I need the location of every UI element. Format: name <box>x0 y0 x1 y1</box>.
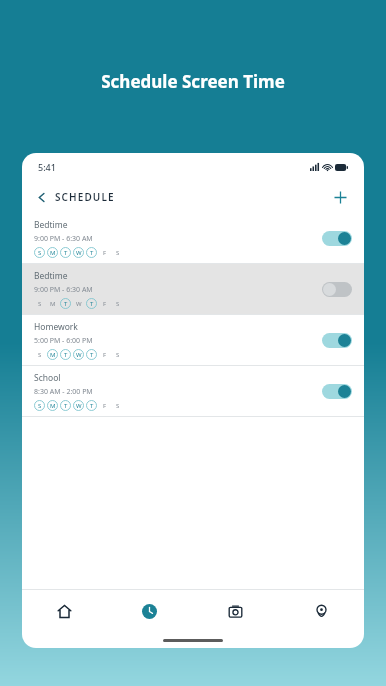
staticText: S <box>38 249 42 257</box>
staticText: T <box>64 249 68 257</box>
staticText: F <box>103 402 107 410</box>
button[interactable]: Schedule on <box>322 384 352 399</box>
staticText: M <box>50 249 56 257</box>
button[interactable]: School <box>22 366 364 416</box>
button[interactable]: Schedule <box>107 590 192 632</box>
staticText: W <box>76 249 82 257</box>
button[interactable]: Schedule on <box>322 231 352 246</box>
staticText: Schedule Screen Time <box>0 70 386 93</box>
button[interactable]: Location <box>278 590 364 632</box>
staticText: M <box>50 300 56 308</box>
staticText: M <box>50 402 56 410</box>
button[interactable]: Schedule off <box>322 282 352 297</box>
button[interactable]: Homework <box>22 315 364 365</box>
staticText: 8:30 AM - 2:00 PM <box>34 387 93 397</box>
button[interactable]: Bedtime <box>22 264 364 314</box>
staticText: Homework <box>34 321 78 333</box>
staticText: 5:00 PM - 6:00 PM <box>34 336 93 346</box>
staticText: T <box>90 249 94 257</box>
staticText: S <box>38 351 42 359</box>
staticText: F <box>103 249 107 257</box>
staticText: T <box>64 402 68 410</box>
staticText: 9:00 PM - 6:30 AM <box>34 234 93 244</box>
staticText: School <box>34 372 61 384</box>
staticText: S <box>38 402 42 410</box>
staticText: F <box>103 351 107 359</box>
staticText: W <box>76 351 82 359</box>
staticText: W <box>76 402 82 410</box>
staticText: 5:41 <box>38 161 56 173</box>
staticText: S <box>116 300 120 308</box>
staticText: Bedtime <box>34 270 68 282</box>
button[interactable]: Camera <box>192 590 278 632</box>
button[interactable]: Schedule on <box>322 333 352 348</box>
button[interactable]: Bedtime <box>22 213 364 263</box>
button[interactable]: Home <box>22 590 107 632</box>
other: Back <box>36 192 47 203</box>
button[interactable]: Add schedule <box>326 183 354 211</box>
staticText: S <box>116 351 120 359</box>
staticText: T <box>64 351 68 359</box>
staticText: 9:00 PM - 6:30 AM <box>34 285 93 295</box>
staticText: T <box>90 300 94 308</box>
staticText: T <box>90 351 94 359</box>
staticText: F <box>103 300 107 308</box>
staticText: S <box>38 300 42 308</box>
staticText: T <box>64 300 68 308</box>
staticText: W <box>76 300 82 308</box>
staticText: M <box>50 351 56 359</box>
staticText: T <box>90 402 94 410</box>
staticText: S <box>116 249 120 257</box>
staticText: Bedtime <box>34 219 68 231</box>
staticText: S <box>116 402 120 410</box>
button[interactable]: Back <box>32 186 119 208</box>
staticText: SCHEDULE <box>55 190 115 204</box>
